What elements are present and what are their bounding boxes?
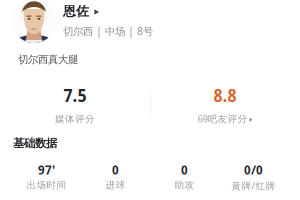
button[interactable]: 恩佐	[0, 0, 300, 47]
staticText: 97'	[38, 161, 55, 178]
staticText: 切尔西真大腿	[18, 53, 78, 66]
button[interactable]: 8.8	[150, 80, 300, 124]
staticText: 助攻	[174, 179, 194, 191]
staticText: 0	[112, 161, 119, 178]
staticText: 基础数据	[13, 136, 57, 150]
button[interactable]: 7.5	[0, 80, 150, 124]
staticText: 恩佐	[63, 3, 89, 19]
staticText: 7.5	[63, 83, 86, 107]
staticText: 出场时间	[26, 179, 66, 191]
staticText: 进球	[105, 179, 125, 191]
staticText: 媒体评分	[55, 113, 95, 125]
staticText: 黄牌/红牌	[231, 179, 275, 192]
staticText: 切尔西 | 中场 | 8号	[63, 24, 153, 38]
staticText: 0	[181, 161, 188, 178]
staticText: 8.8	[213, 83, 236, 107]
staticText: 0/0	[244, 161, 263, 178]
staticText: 69吧友评分	[197, 112, 247, 125]
